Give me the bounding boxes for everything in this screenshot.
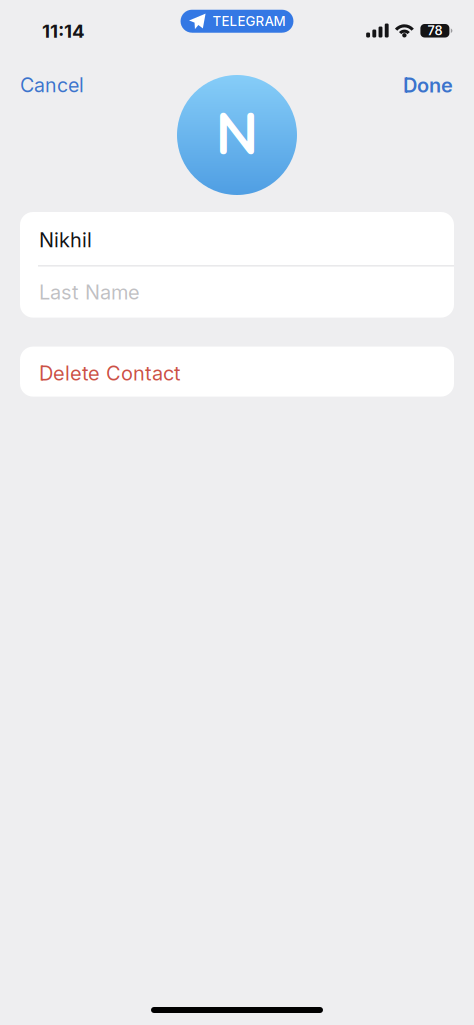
staticText: TELEGRAM	[212, 13, 285, 29]
button[interactable]: Done	[389, 63, 474, 107]
button[interactable]: Change contact photo	[177, 75, 297, 195]
staticText: Cancel	[20, 73, 84, 97]
staticText: 78	[427, 23, 442, 38]
staticText: Last Name	[39, 280, 140, 304]
staticText: Done	[403, 73, 453, 97]
button[interactable]: Last Name	[20, 267, 454, 318]
button[interactable]: Nikhil	[20, 212, 454, 265]
staticText: Nikhil	[39, 228, 92, 252]
staticText: 11:14	[42, 20, 85, 42]
staticText: Delete Contact	[39, 361, 181, 385]
button[interactable]: Delete Contact	[0, 347, 474, 397]
staticText: N	[215, 96, 258, 174]
button[interactable]: Cancel	[0, 63, 98, 107]
